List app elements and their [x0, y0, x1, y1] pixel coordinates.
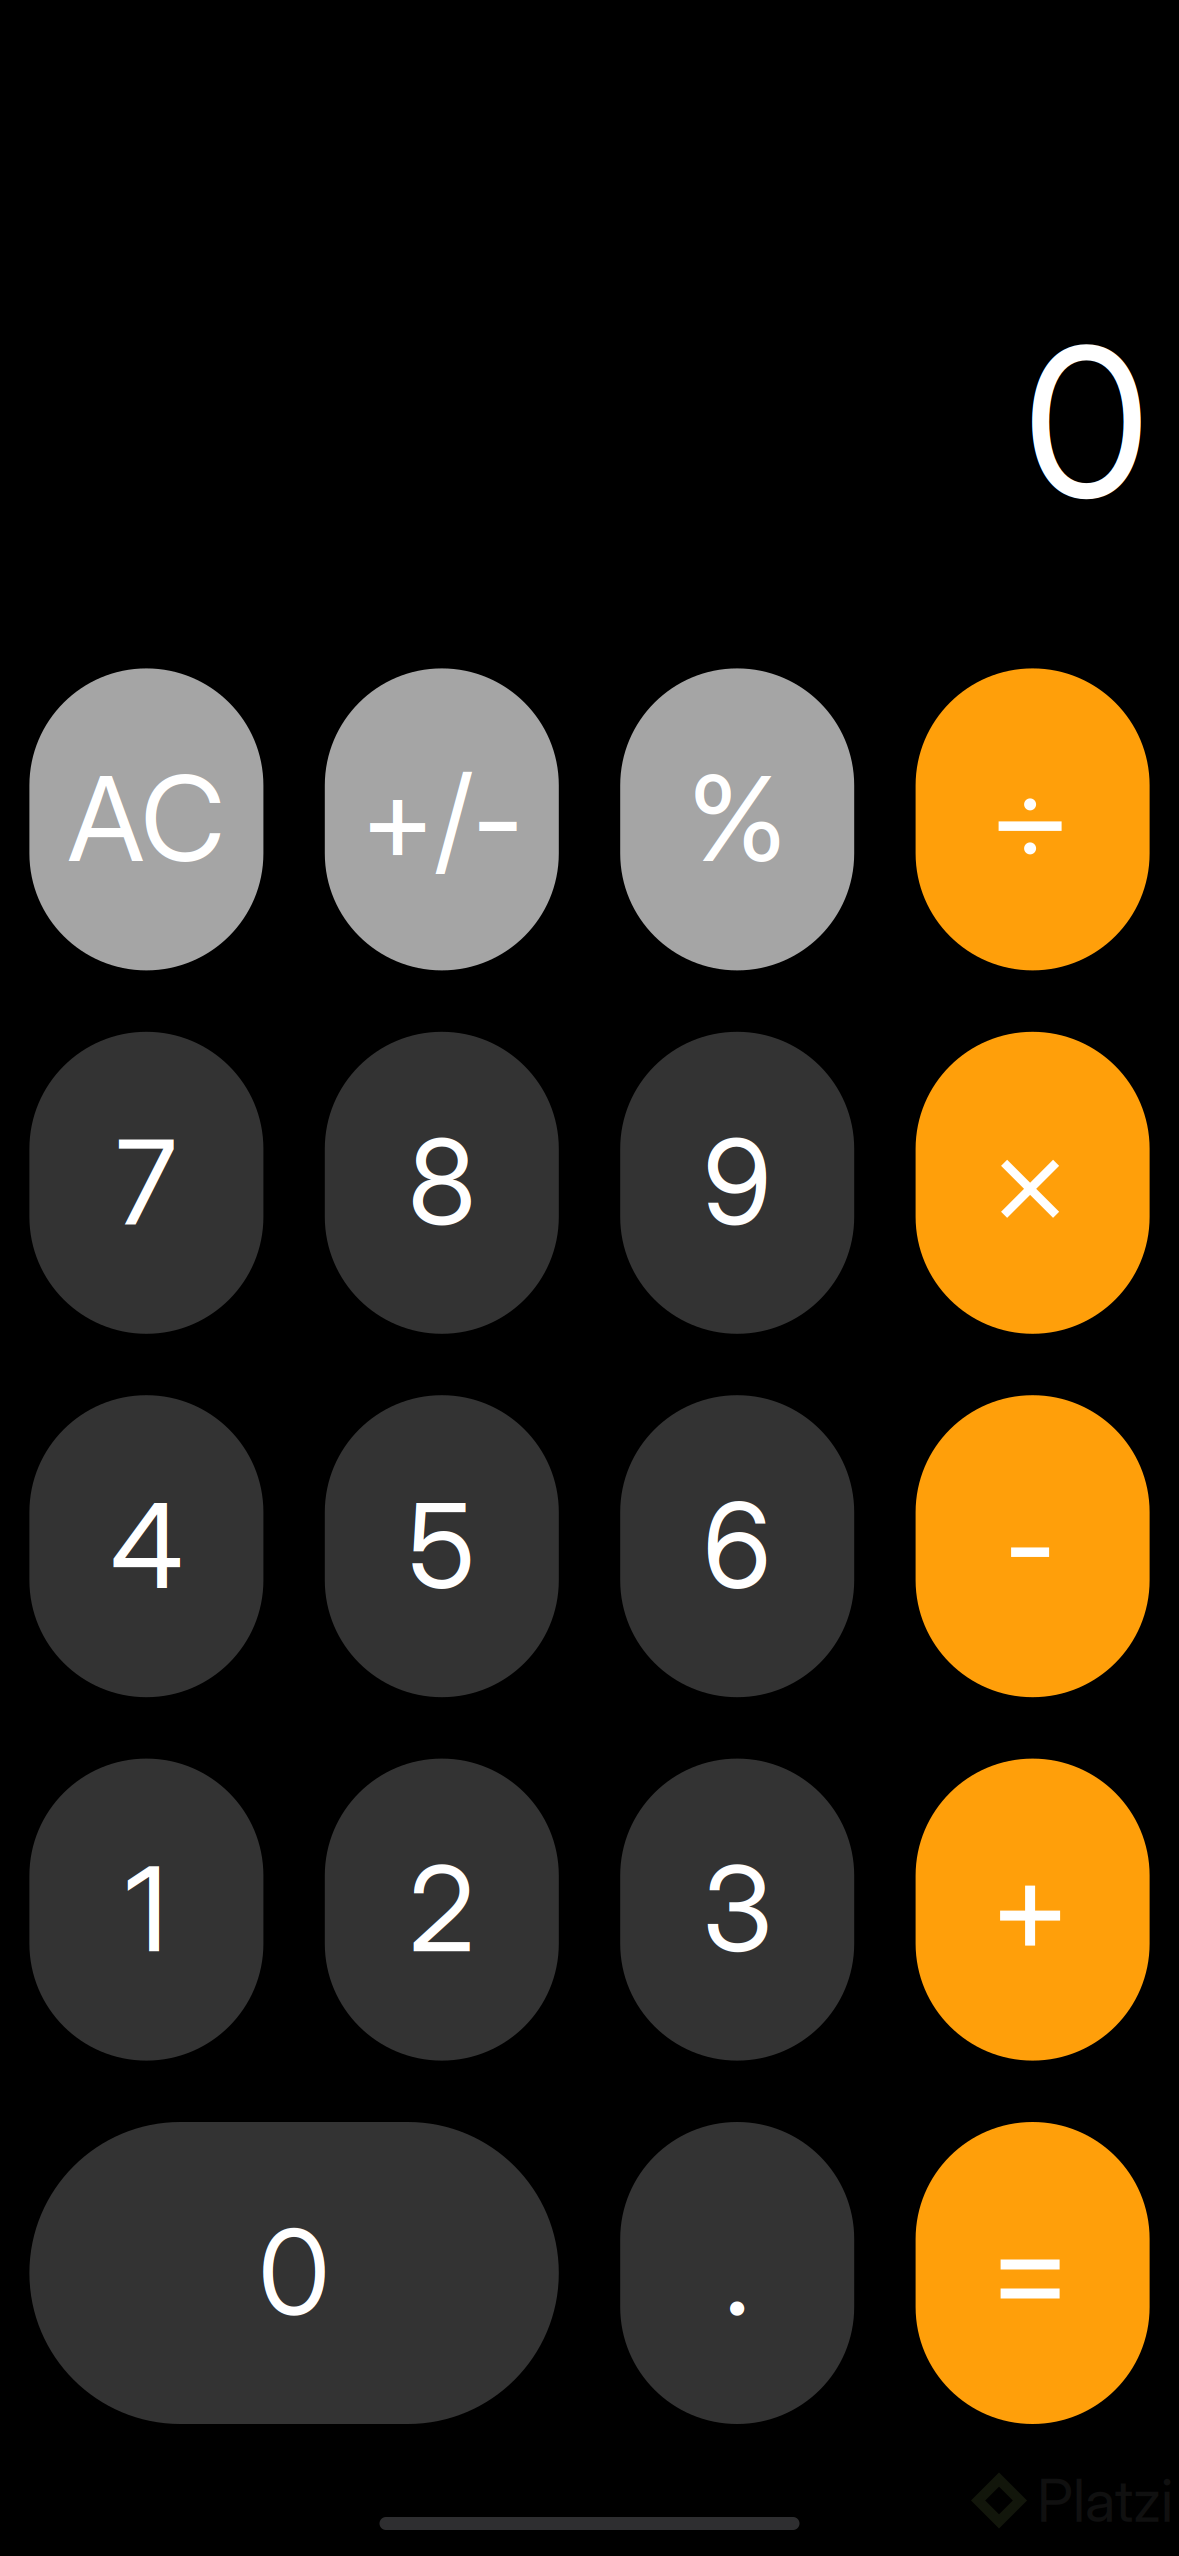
staticText: 1 — [125, 1838, 168, 1980]
staticText: +/- — [361, 747, 523, 889]
staticText: 4 — [110, 1474, 182, 1616]
button[interactable]: Multiply — [916, 1032, 1150, 1334]
button[interactable]: Add — [916, 1759, 1150, 2061]
staticText: Platzi — [1037, 2465, 1173, 2536]
staticText: 0 — [258, 2201, 330, 2343]
staticText: 6 — [703, 1474, 772, 1616]
button[interactable]: 2 — [325, 1759, 559, 2061]
button[interactable]: 8 — [325, 1032, 559, 1334]
staticText: AC — [67, 747, 225, 889]
staticText: 2 — [409, 1838, 475, 1980]
button[interactable]: 3 — [620, 1759, 854, 2061]
button[interactable]: All Clear — [29, 668, 263, 970]
staticText: . — [724, 2201, 750, 2343]
button[interactable]: Change Sign — [325, 668, 559, 970]
button[interactable]: 0 — [29, 2122, 559, 2424]
staticText: % — [688, 747, 787, 889]
button[interactable]: 7 — [29, 1032, 263, 1334]
button[interactable]: Divide — [916, 668, 1150, 970]
button[interactable]: 1 — [29, 1759, 263, 2061]
button[interactable]: 6 — [620, 1395, 854, 1697]
staticText: 9 — [703, 1111, 772, 1253]
staticText: 5 — [408, 1474, 476, 1616]
button[interactable]: 9 — [620, 1032, 854, 1334]
staticText: 7 — [116, 1111, 177, 1253]
button[interactable]: Equals — [916, 2122, 1150, 2424]
button[interactable]: 4 — [29, 1395, 263, 1697]
staticText: 3 — [702, 1838, 772, 1980]
button[interactable]: 5 — [325, 1395, 559, 1697]
staticText: 8 — [408, 1111, 476, 1253]
button[interactable]: Subtract — [916, 1395, 1150, 1697]
staticText: 0 — [1023, 297, 1150, 547]
button[interactable]: Percent — [620, 668, 854, 970]
button[interactable]: Decimal Point — [620, 2122, 854, 2424]
